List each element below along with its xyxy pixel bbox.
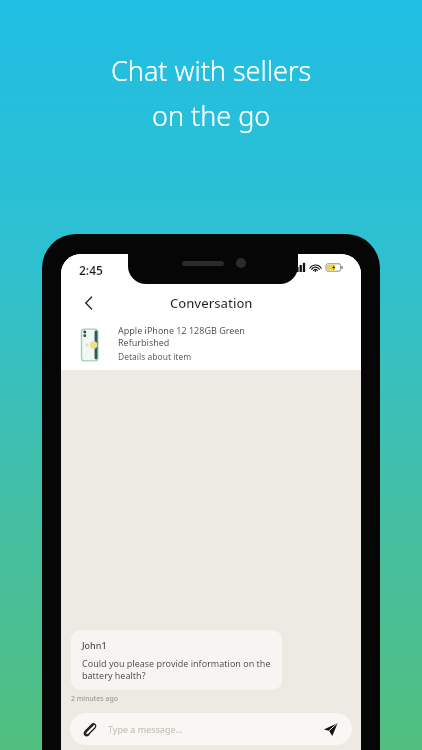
staticText: 2 minutes ago [71,694,118,704]
staticText: Type a message... [108,723,183,735]
staticText: Conversation [170,294,253,312]
button[interactable]: Apple iPhone 12 128GB Green [61,322,361,370]
staticText: on the go [152,97,271,134]
button[interactable]: John1 [71,630,282,690]
staticText: Could you please provide information on … [82,657,271,669]
staticText: battery health? [82,669,146,681]
staticText: John1 [82,639,107,651]
staticText: Details about item [118,351,192,363]
staticText: Refurbished [118,336,170,348]
button[interactable]: Send [318,717,342,741]
button[interactable]: Attach file [78,718,100,740]
staticText: Apple iPhone 12 128GB Green [118,324,245,336]
staticText: Chat with sellers [111,52,312,89]
button[interactable]: Back [73,287,105,319]
staticText: 2:45 [79,262,103,278]
